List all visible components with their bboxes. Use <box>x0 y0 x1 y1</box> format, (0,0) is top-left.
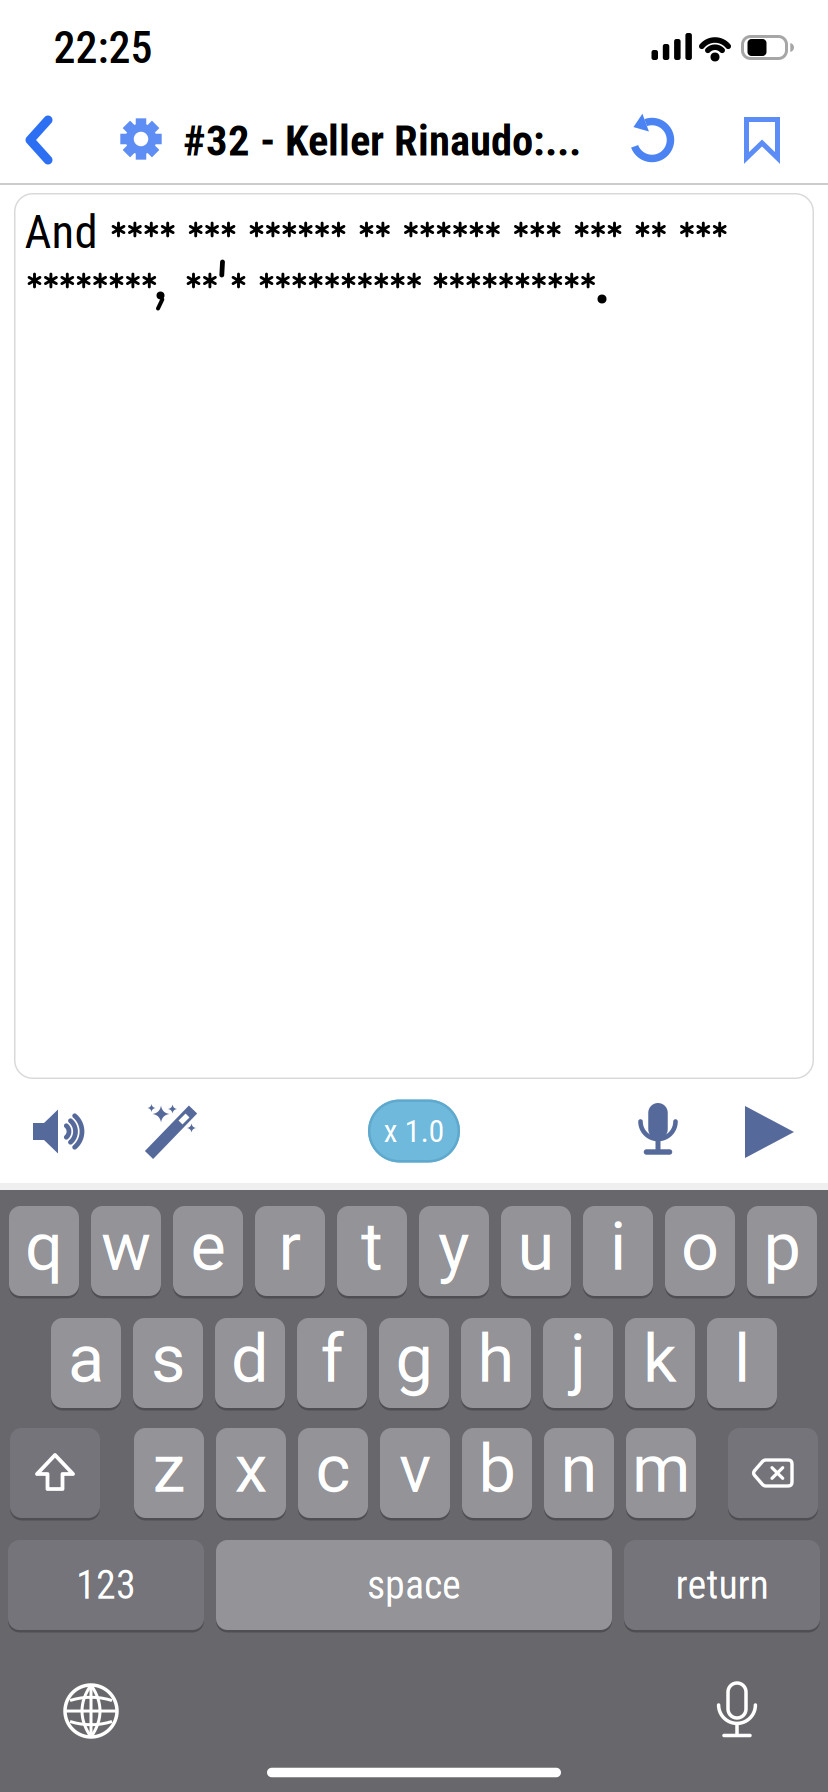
button[interactable]: m <box>626 1427 696 1519</box>
button[interactable]: return <box>624 1539 820 1631</box>
staticText: f <box>320 1320 343 1398</box>
staticText: space <box>367 1562 461 1608</box>
button[interactable]: w <box>91 1205 161 1297</box>
button[interactable] <box>29 1100 91 1162</box>
button[interactable] <box>63 1683 119 1739</box>
button[interactable]: l <box>707 1317 777 1409</box>
button[interactable]: r <box>255 1205 325 1297</box>
button[interactable]: i <box>583 1205 653 1297</box>
staticText: i <box>610 1208 626 1286</box>
button[interactable]: t <box>337 1205 407 1297</box>
staticText: b <box>478 1430 515 1508</box>
staticText: t <box>361 1208 383 1286</box>
staticText: y <box>438 1208 470 1286</box>
button[interactable]: b <box>462 1427 532 1519</box>
staticText: n <box>560 1430 597 1508</box>
staticText: x 1.0 <box>383 1112 444 1150</box>
staticText: return <box>675 1562 768 1608</box>
button[interactable] <box>744 117 780 161</box>
button[interactable]: 123 <box>8 1539 204 1631</box>
button[interactable]: j <box>543 1317 613 1409</box>
staticText: g <box>395 1320 432 1398</box>
button[interactable]: d <box>215 1317 285 1409</box>
staticText: And <box>24 205 97 259</box>
button[interactable]: x <box>216 1427 286 1519</box>
staticText: a <box>68 1320 104 1398</box>
staticText: m <box>632 1430 690 1508</box>
staticText: l <box>734 1320 750 1398</box>
button[interactable]: k <box>625 1317 695 1409</box>
button[interactable] <box>630 1103 686 1173</box>
staticText: v <box>399 1430 431 1508</box>
staticText: r <box>278 1208 301 1286</box>
staticText: s <box>151 1320 185 1398</box>
button[interactable] <box>117 115 165 163</box>
button[interactable] <box>627 115 677 165</box>
staticText: p <box>763 1208 800 1286</box>
staticText: x <box>234 1430 267 1508</box>
staticText: #32 - Keller Rinaudo:... <box>183 116 581 166</box>
button[interactable]: n <box>544 1427 614 1519</box>
staticText: 123 <box>76 1562 136 1608</box>
staticText: h <box>477 1320 514 1398</box>
staticText: 22:25 <box>53 22 152 74</box>
button[interactable]: g <box>379 1317 449 1409</box>
button[interactable] <box>136 1095 202 1161</box>
staticText: j <box>570 1320 586 1398</box>
button[interactable]: z <box>134 1427 204 1519</box>
button[interactable]: s <box>133 1317 203 1409</box>
button[interactable]: y <box>419 1205 489 1297</box>
button[interactable]: q <box>9 1205 79 1297</box>
button[interactable]: e <box>173 1205 243 1297</box>
button[interactable]: p <box>747 1205 817 1297</box>
button[interactable]: x 1.0 <box>368 1099 460 1162</box>
staticText: z <box>152 1430 185 1508</box>
staticText: k <box>643 1320 677 1398</box>
staticText: o <box>681 1208 719 1286</box>
staticText: w <box>101 1208 151 1286</box>
staticText: q <box>25 1208 63 1286</box>
button[interactable] <box>24 116 54 164</box>
button[interactable]: u <box>501 1205 571 1297</box>
staticText: e <box>190 1208 225 1286</box>
button[interactable]: a <box>51 1317 121 1409</box>
button[interactable] <box>728 1427 818 1519</box>
button[interactable] <box>744 1105 796 1159</box>
button[interactable] <box>10 1427 100 1519</box>
button[interactable]: f <box>297 1317 367 1409</box>
staticText: c <box>315 1430 350 1508</box>
button[interactable]: v <box>380 1427 450 1519</box>
staticText: d <box>231 1320 269 1398</box>
button[interactable]: space <box>216 1539 612 1631</box>
button[interactable]: o <box>665 1205 735 1297</box>
button[interactable]: c <box>298 1427 368 1519</box>
button[interactable]: h <box>461 1317 531 1409</box>
staticText: u <box>517 1208 554 1286</box>
button[interactable] <box>707 1681 767 1743</box>
